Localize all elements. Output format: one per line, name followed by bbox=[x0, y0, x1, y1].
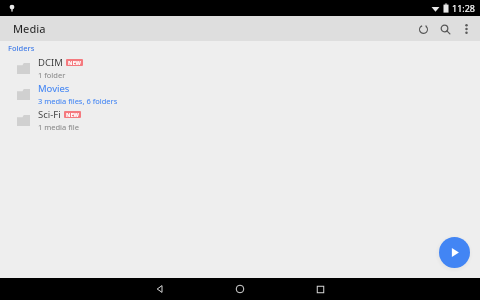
staticText: Movies bbox=[38, 82, 70, 95]
button[interactable]: Search bbox=[434, 18, 456, 40]
staticText: NEW bbox=[68, 59, 81, 66]
staticText: 11:28 bbox=[452, 2, 476, 14]
staticText: Media bbox=[13, 21, 46, 36]
button[interactable]: Refresh bbox=[412, 18, 434, 40]
staticText: 1 media file bbox=[38, 122, 79, 132]
button[interactable]: Home bbox=[200, 278, 280, 300]
button[interactable]: Play bbox=[439, 237, 470, 268]
button[interactable]: Back bbox=[120, 278, 200, 300]
staticText: DCIM bbox=[38, 56, 63, 69]
button[interactable]: Movies bbox=[0, 81, 480, 107]
staticText: Sci-Fi bbox=[38, 108, 61, 121]
button[interactable]: Sci-Fi bbox=[0, 107, 480, 133]
staticText: 1 folder bbox=[38, 70, 66, 80]
button[interactable]: More options bbox=[456, 19, 476, 39]
staticText: NEW bbox=[66, 111, 79, 118]
staticText: 3 media files, 6 folders bbox=[38, 96, 118, 106]
button[interactable]: Recents bbox=[280, 278, 360, 300]
button[interactable]: DCIM bbox=[0, 55, 480, 81]
staticText: Folders bbox=[8, 43, 35, 53]
